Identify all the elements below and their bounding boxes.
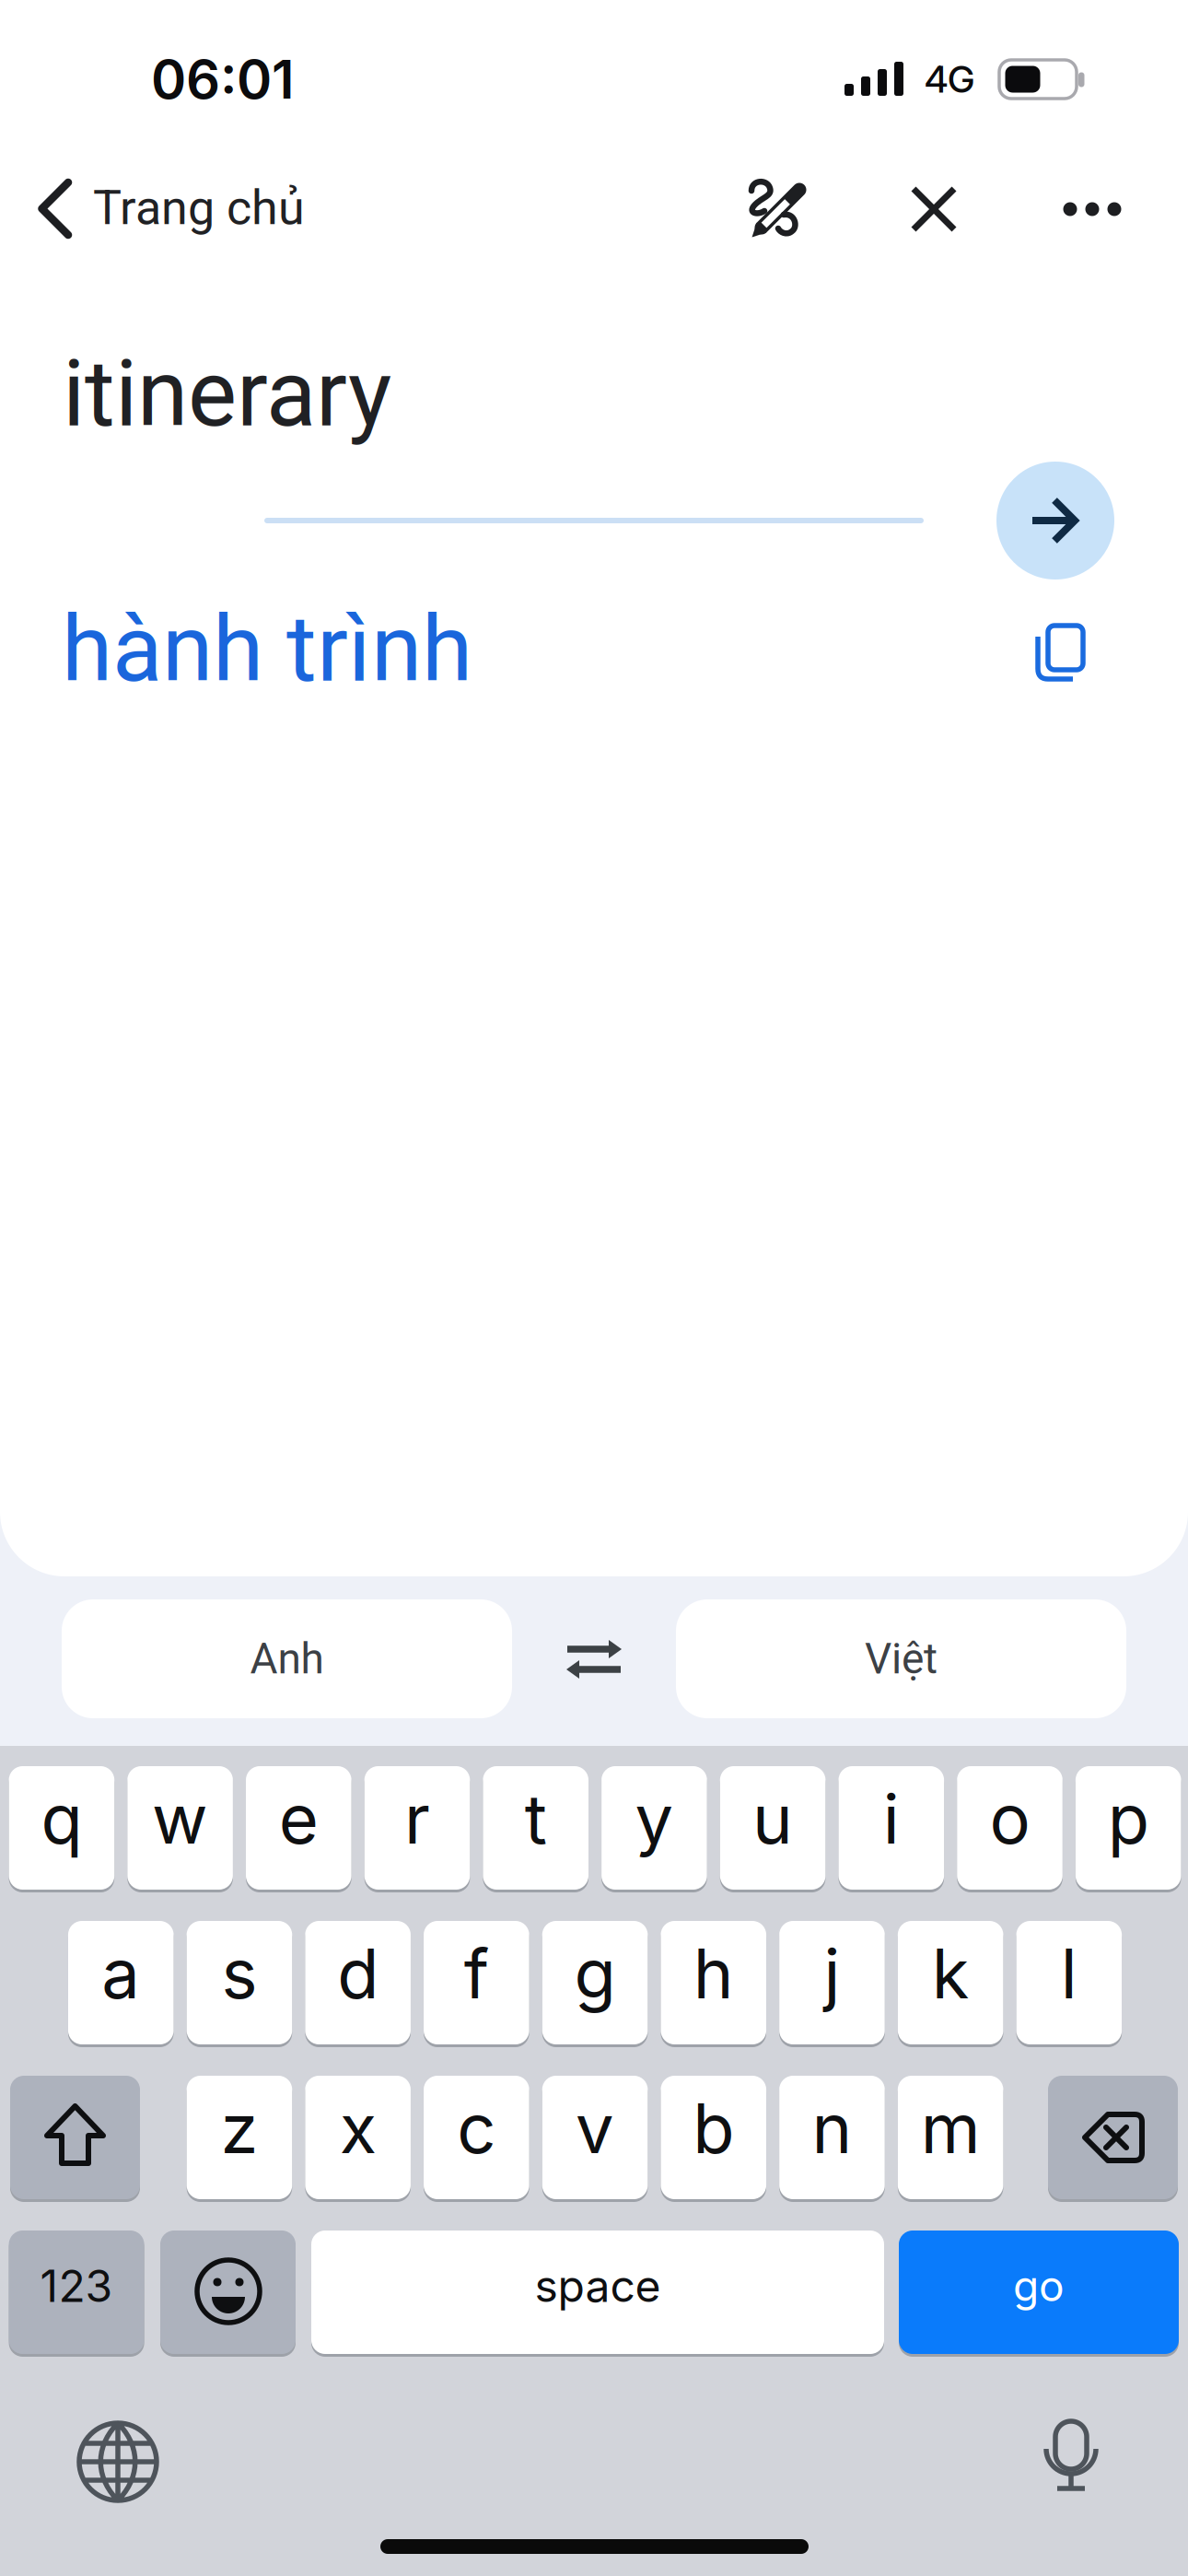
button[interactable]: r (364, 1766, 470, 1890)
button[interactable]: Trang chủ (0, 0, 1188, 2576)
button[interactable]: y (601, 1766, 707, 1890)
staticText: y (635, 1777, 674, 1860)
button[interactable]: b (661, 2076, 766, 2199)
staticText: m (921, 2087, 980, 2169)
button[interactable]: go (899, 2231, 1179, 2354)
button[interactable]: n (779, 2076, 885, 2199)
button[interactable]: i (839, 1766, 944, 1890)
button[interactable]: m (898, 2076, 1003, 2199)
button[interactable]: Việt (676, 1599, 1126, 1718)
button[interactable]: w (127, 1766, 233, 1890)
staticText: h (693, 1932, 734, 2015)
button[interactable]: h (661, 1921, 766, 2044)
staticText: g (574, 1932, 616, 2015)
staticText: f (464, 1932, 489, 2015)
button[interactable]: k (898, 1921, 1003, 2044)
button[interactable]: x (305, 2076, 411, 2199)
button[interactable] (0, 0, 1188, 2576)
button[interactable] (1048, 2076, 1178, 2199)
button[interactable]: f (424, 1921, 529, 2044)
button[interactable]: z (187, 2076, 292, 2199)
button[interactable] (0, 0, 1188, 2576)
staticText: z (220, 2087, 258, 2169)
button[interactable]: g (542, 1921, 648, 2044)
staticText: b (693, 2087, 734, 2169)
button[interactable] (0, 0, 1188, 2576)
staticText: d (337, 1932, 379, 2015)
button[interactable]: u (720, 1766, 826, 1890)
staticText: Việt (865, 1634, 938, 1684)
button[interactable]: t (483, 1766, 588, 1890)
staticText: v (576, 2087, 614, 2169)
button[interactable] (10, 2076, 140, 2199)
button[interactable]: e (246, 1766, 351, 1890)
staticText: n (812, 2087, 852, 2169)
button[interactable] (0, 0, 1188, 2576)
staticText: 123 (40, 2259, 113, 2313)
button[interactable]: s (187, 1921, 292, 2044)
staticText: k (932, 1932, 969, 2015)
staticText: u (752, 1777, 793, 1860)
staticText: q (41, 1777, 82, 1860)
staticText: o (990, 1777, 1030, 1860)
button[interactable]: d (305, 1921, 411, 2044)
staticText: hành trình (62, 595, 472, 703)
button[interactable]: q (9, 1766, 114, 1890)
button[interactable] (160, 2231, 296, 2354)
button[interactable] (0, 0, 1188, 2576)
staticText: l (1061, 1932, 1077, 2015)
button[interactable] (996, 462, 1114, 580)
staticText: itinerary (63, 340, 391, 448)
staticText: Trang chủ (93, 180, 305, 236)
staticText: 06:01 (151, 47, 295, 112)
staticText: i (883, 1777, 900, 1860)
staticText: w (152, 1777, 208, 1860)
button[interactable]: o (957, 1766, 1063, 1890)
staticText: Anh (250, 1634, 324, 1684)
staticText: t (525, 1777, 547, 1860)
staticText: c (457, 2087, 496, 2169)
button[interactable] (0, 0, 1188, 2576)
staticText: r (404, 1777, 430, 1860)
staticText: space (535, 2259, 661, 2313)
button[interactable] (0, 0, 1188, 2576)
staticText: p (1108, 1777, 1149, 1860)
button[interactable]: p (1076, 1766, 1181, 1890)
button[interactable]: space (311, 2231, 884, 2354)
button[interactable]: Anh (62, 1599, 512, 1718)
button[interactable]: j (779, 1921, 885, 2044)
staticText: j (824, 1932, 840, 2015)
button[interactable]: c (424, 2076, 529, 2199)
button[interactable]: v (542, 2076, 648, 2199)
button[interactable]: a (68, 1921, 174, 2044)
button[interactable]: 123 (9, 2231, 144, 2354)
button[interactable]: l (1016, 1921, 1122, 2044)
staticText: a (101, 1932, 140, 2015)
staticText: e (279, 1777, 318, 1860)
staticText: 4G (925, 57, 974, 102)
staticText: go (1013, 2260, 1065, 2311)
staticText: s (221, 1932, 257, 2015)
staticText: x (340, 2087, 376, 2169)
